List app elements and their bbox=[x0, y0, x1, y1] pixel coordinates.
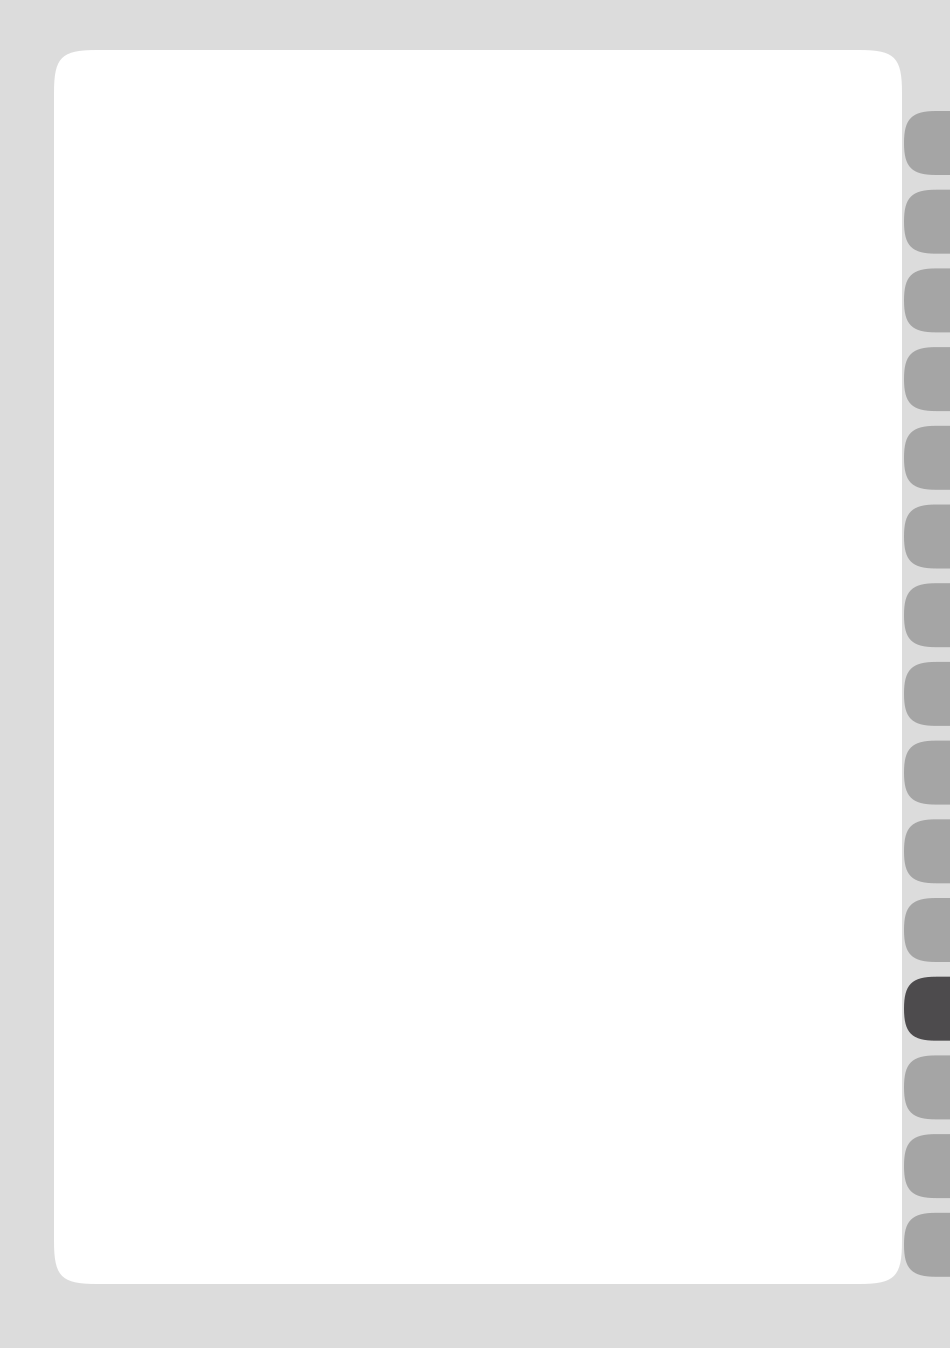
button[interactable]: Tab 9 bbox=[904, 741, 950, 805]
button[interactable]: Tab 10 bbox=[904, 819, 950, 883]
button[interactable]: Tab 3 bbox=[904, 268, 950, 332]
button[interactable]: Tab 15 bbox=[904, 1213, 950, 1277]
button[interactable]: Tab 13 bbox=[904, 1055, 950, 1119]
button[interactable]: Tab 12, selected bbox=[904, 977, 950, 1041]
button[interactable]: Tab 5 bbox=[904, 426, 950, 490]
button[interactable]: Tab 1 bbox=[904, 111, 950, 175]
button[interactable]: Tab 14 bbox=[904, 1134, 950, 1198]
button[interactable]: Tab 8 bbox=[904, 662, 950, 726]
button[interactable]: Tab 6 bbox=[904, 504, 950, 568]
button[interactable]: Tab 7 bbox=[904, 583, 950, 647]
button[interactable]: Tab 2 bbox=[904, 190, 950, 254]
button[interactable]: Tab 11 bbox=[904, 898, 950, 962]
button[interactable]: Tab 4 bbox=[904, 347, 950, 411]
